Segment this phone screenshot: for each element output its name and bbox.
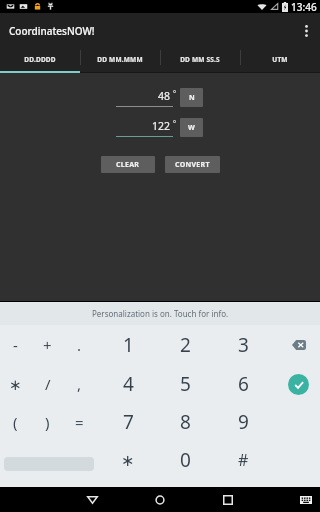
button[interactable]: +	[32, 326, 63, 364]
button[interactable]: .	[64, 326, 95, 364]
staticText: N	[189, 93, 195, 103]
button[interactable]: 8	[157, 403, 214, 441]
button[interactable]: 4	[102, 365, 154, 403]
staticText: °	[173, 119, 176, 129]
staticText: 3	[238, 332, 249, 358]
button[interactable]: /	[32, 365, 63, 403]
button[interactable]: More options	[292, 13, 320, 45]
staticText: -	[13, 335, 18, 355]
button[interactable]: 0	[157, 441, 214, 479]
button[interactable]: DD.DDDD	[0, 45, 80, 73]
button[interactable]: -	[0, 326, 31, 364]
other: Backspace	[292, 340, 306, 350]
button[interactable]: Recent apps	[211, 487, 245, 512]
staticText: )	[45, 412, 50, 432]
button[interactable]: Back	[75, 487, 109, 512]
staticText: 8	[180, 409, 191, 435]
staticText: 9	[238, 409, 249, 435]
staticText: /	[45, 374, 51, 394]
staticText: 6	[238, 371, 249, 397]
button[interactable]: Backspace	[275, 326, 320, 364]
button[interactable]: DD MM.MMM	[80, 45, 160, 73]
button[interactable]: 1	[102, 326, 154, 364]
staticText: DD MM SS.S	[180, 55, 220, 64]
staticText: 48	[158, 89, 171, 103]
staticText: W	[188, 123, 195, 133]
staticText: 4	[123, 371, 134, 397]
staticText: 0	[180, 447, 191, 473]
staticText: =	[75, 412, 84, 432]
button[interactable]: 5	[157, 365, 214, 403]
staticText: CONVERT	[175, 160, 210, 170]
staticText: #	[238, 449, 249, 471]
staticText: .	[77, 335, 82, 355]
staticText: 1	[123, 332, 134, 358]
staticText: ∗	[121, 451, 135, 470]
button[interactable]: CLEAR	[101, 156, 155, 173]
staticText: CLEAR	[116, 160, 140, 170]
staticText: +	[43, 335, 52, 355]
staticText: 13:46	[291, 0, 317, 13]
staticText: DD.DDDD	[24, 55, 56, 64]
button[interactable]: Switch keyboard	[289, 487, 320, 512]
button[interactable]: CONVERT	[165, 156, 220, 173]
button[interactable]: 7	[102, 403, 154, 441]
staticText: Personalization is on. Touch for info.	[92, 308, 229, 319]
button[interactable]: 6	[215, 365, 272, 403]
other: Done	[288, 374, 309, 395]
button[interactable]: ∗	[102, 441, 154, 479]
staticText: ∗	[9, 376, 22, 393]
button[interactable]: ,	[64, 365, 95, 403]
staticText: 5	[180, 371, 191, 397]
button[interactable]: Done	[275, 365, 320, 403]
button[interactable]: =	[64, 403, 95, 441]
button[interactable]: Home	[143, 487, 177, 512]
button[interactable]: )	[32, 403, 63, 441]
staticText: 7	[123, 409, 134, 435]
staticText: UTM	[272, 55, 288, 64]
staticText: (	[13, 412, 18, 432]
staticText: DD MM.MMM	[97, 55, 143, 64]
staticText: 122	[152, 119, 171, 133]
staticText: ,	[77, 374, 82, 394]
button[interactable]: Space	[0, 441, 98, 479]
button[interactable]: 2	[157, 326, 214, 364]
staticText: 2	[180, 332, 191, 358]
button[interactable]: #	[215, 441, 272, 479]
button[interactable]: (	[0, 403, 31, 441]
button[interactable]: 3	[215, 326, 272, 364]
button[interactable]: DD MM SS.S	[160, 45, 240, 73]
staticText: °	[173, 89, 176, 99]
button[interactable]: UTM	[240, 45, 320, 73]
button[interactable]: N	[180, 88, 203, 107]
button[interactable]: ∗	[0, 365, 31, 403]
button[interactable]: 9	[215, 403, 272, 441]
button[interactable]: W	[180, 118, 203, 137]
staticText: CoordinatesNOW!	[9, 24, 95, 38]
